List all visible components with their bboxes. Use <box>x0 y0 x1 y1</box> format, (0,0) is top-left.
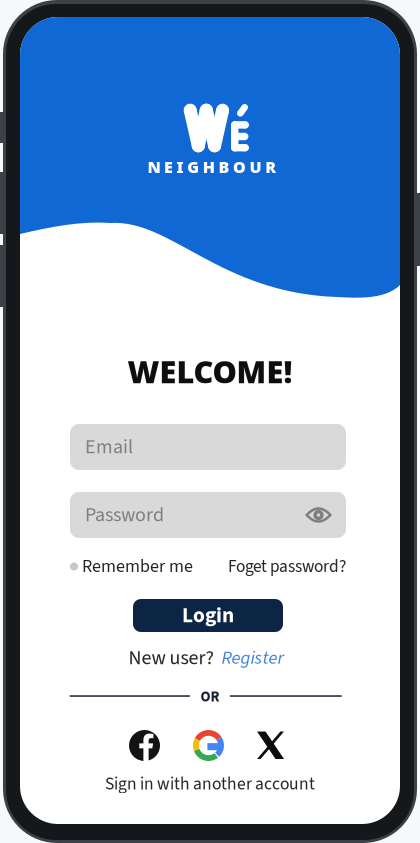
button[interactable]: Show password <box>305 505 332 524</box>
button[interactable]: Remember me <box>70 554 193 579</box>
button[interactable]: Login <box>133 599 283 632</box>
staticText: OR <box>200 686 219 707</box>
staticText: Password <box>85 501 164 529</box>
staticText: WELCOME! <box>127 350 292 392</box>
staticText: Remember me <box>82 554 193 579</box>
staticText: NEIGHBOUR <box>147 156 276 178</box>
button[interactable]: Sign in with another account <box>20 774 400 794</box>
staticText: Login <box>182 600 234 631</box>
staticText: New user? <box>128 644 214 672</box>
button[interactable]: Register <box>221 645 283 671</box>
staticText: Register <box>221 645 283 671</box>
staticText: Email <box>85 433 133 461</box>
staticText: Sign in with another account <box>105 772 315 796</box>
button[interactable]: Sign in with Google <box>193 730 224 761</box>
button[interactable]: Sign in with X <box>257 731 284 759</box>
button[interactable]: Sign in with Facebook <box>129 730 160 761</box>
button[interactable]: Foget password? <box>228 554 346 579</box>
staticText: Foget password? <box>228 554 346 579</box>
